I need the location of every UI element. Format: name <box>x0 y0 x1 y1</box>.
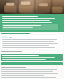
button[interactable]: Header image <box>0 0 64 14</box>
button[interactable] <box>2 24 58 30</box>
button[interactable] <box>1 54 63 61</box>
button[interactable] <box>1 35 63 49</box>
